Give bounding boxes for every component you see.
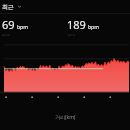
staticText: 최근 [2, 3, 14, 11]
button[interactable] [0, 36, 130, 114]
staticText: 69 [2, 17, 15, 32]
staticText: 189 [67, 17, 86, 32]
button[interactable]: 189 [65, 14, 130, 36]
staticText: 거리(km) [55, 114, 76, 121]
other: Select range [17, 4, 22, 9]
staticText: 최대 [67, 33, 75, 36]
staticText: 평균 [2, 33, 10, 36]
staticText: bpm [17, 24, 28, 31]
staticText: bpm [88, 24, 99, 31]
button[interactable]: 69 [0, 14, 65, 36]
button[interactable]: 최근 [0, 0, 130, 13]
